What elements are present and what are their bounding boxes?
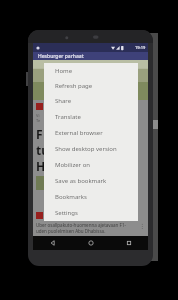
button[interactable]: Back — [33, 236, 72, 250]
button[interactable]: Settings — [44, 205, 138, 221]
staticText: Te — [36, 118, 41, 123]
staticText: Home — [55, 67, 73, 75]
button[interactable]: Home — [72, 236, 110, 250]
staticText: Hesburger parhaat — [38, 53, 84, 60]
staticText: Bookmarks — [55, 193, 87, 201]
staticText: Show desktop version — [55, 145, 117, 153]
staticText: ⋮ — [139, 222, 145, 229]
staticText: External browser — [55, 129, 103, 137]
button[interactable]: Recent apps — [110, 236, 148, 250]
button[interactable]: Show desktop version — [44, 141, 138, 157]
staticText: H — [36, 158, 46, 174]
staticText: Uber osallpakuto-huomenna ajetavaan F1- … — [36, 222, 139, 234]
button[interactable]: External browser — [44, 125, 138, 141]
staticText: tu — [36, 142, 50, 158]
staticText: Refresh page — [55, 82, 93, 90]
staticText: 19:19 — [135, 45, 146, 50]
button[interactable]: Bookmarks — [44, 189, 138, 205]
staticText: Share — [55, 97, 72, 105]
button[interactable]: Mobilizer on — [44, 157, 138, 173]
button[interactable]: Home — [44, 63, 138, 78]
button[interactable]: Translate — [44, 109, 138, 125]
staticText: F — [36, 126, 43, 142]
staticText: Mobilizer on — [55, 161, 90, 169]
staticText: Settings — [55, 209, 78, 217]
button[interactable]: Save as bookmark — [44, 173, 138, 189]
button[interactable]: Refresh page — [44, 78, 138, 93]
staticText: Save as bookmark — [55, 177, 107, 185]
staticText: Translate — [55, 113, 81, 121]
button[interactable]: Share — [44, 93, 138, 109]
staticText: Vi — [36, 113, 40, 118]
